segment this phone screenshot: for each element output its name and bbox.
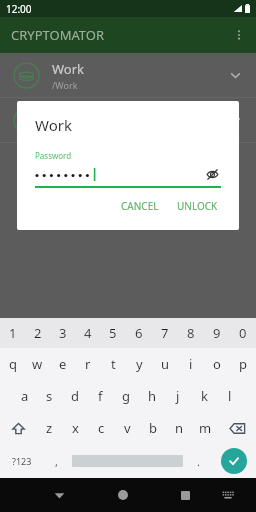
- button[interactable]: o: [204, 348, 230, 380]
- button[interactable]: s: [37, 380, 62, 412]
- button[interactable]: Expand: [218, 103, 252, 137]
- staticText: z: [46, 419, 53, 437]
- button[interactable]: 1: [0, 318, 25, 348]
- button[interactable]: v: [114, 412, 140, 444]
- button[interactable]: Keyboard: [210, 478, 245, 512]
- button[interactable]: 7: [152, 318, 178, 348]
- staticText: e: [59, 355, 67, 373]
- button[interactable]: i: [178, 348, 204, 380]
- button[interactable]: Backspace: [218, 412, 256, 444]
- staticText: g: [122, 387, 130, 405]
- button[interactable]: z: [37, 412, 62, 444]
- staticText: s: [46, 387, 53, 405]
- button[interactable]: b: [140, 412, 166, 444]
- staticText: f: [98, 387, 103, 405]
- staticText: i: [189, 355, 193, 373]
- staticText: 2: [34, 324, 42, 342]
- staticText: n: [175, 419, 184, 437]
- button[interactable]: d: [62, 380, 87, 412]
- button[interactable]: 6: [126, 318, 152, 348]
- button[interactable]: 0: [230, 318, 256, 348]
- staticText: r: [85, 355, 91, 373]
- staticText: 1: [9, 324, 17, 342]
- button[interactable]: Work: [0, 53, 256, 97]
- button[interactable]: 4: [75, 318, 100, 348]
- staticText: m: [199, 419, 212, 437]
- button[interactable]: c: [88, 412, 114, 444]
- button[interactable]: n: [166, 412, 192, 444]
- staticText: /Work: [52, 79, 78, 91]
- staticText: o: [213, 355, 221, 373]
- staticText: 0: [239, 324, 247, 342]
- staticText: l: [228, 387, 232, 405]
- button[interactable]: l: [217, 380, 243, 412]
- staticText: Work: [52, 60, 85, 78]
- button[interactable]: ,: [43, 444, 69, 478]
- button[interactable]: h: [139, 380, 165, 412]
- staticText: h: [148, 387, 157, 405]
- button[interactable]: Recents: [168, 478, 203, 512]
- staticText: Password: [35, 150, 72, 161]
- staticText: p: [239, 355, 247, 373]
- button[interactable]: Show password: [203, 166, 221, 182]
- staticText: q: [9, 355, 17, 373]
- button[interactable]: Home: [105, 478, 140, 512]
- staticText: 3: [59, 324, 67, 342]
- staticText: t: [111, 355, 116, 373]
- staticText: a: [21, 387, 29, 405]
- staticText: CRYPTOMATOR: [11, 26, 105, 44]
- staticText: c: [98, 419, 105, 437]
- button[interactable]: .: [185, 444, 211, 478]
- staticText: 5: [109, 324, 117, 342]
- staticText: Work: [35, 115, 72, 135]
- button[interactable]: Expand: [218, 58, 252, 92]
- button[interactable]: p: [230, 348, 256, 380]
- staticText: x: [72, 419, 79, 437]
- button[interactable]: More options: [222, 18, 256, 52]
- staticText: ,: [55, 454, 58, 469]
- button[interactable]: Space: [69, 444, 185, 478]
- button[interactable]: Enter: [211, 444, 256, 478]
- button[interactable]: e: [50, 348, 75, 380]
- button[interactable]: UNLOCK: [170, 194, 225, 218]
- button[interactable]: k: [191, 380, 217, 412]
- button[interactable]: x: [62, 412, 88, 444]
- staticText: CANCEL: [121, 199, 159, 213]
- button[interactable]: 3: [50, 318, 75, 348]
- staticText: d: [71, 387, 79, 405]
- staticText: b: [149, 419, 157, 437]
- button[interactable]: w: [25, 348, 50, 380]
- button[interactable]: Shift: [0, 412, 37, 444]
- staticText: 7: [161, 324, 169, 342]
- button[interactable]: 9: [204, 318, 230, 348]
- staticText: y: [136, 355, 143, 373]
- button[interactable]: Expand: [0, 98, 256, 142]
- staticText: .: [197, 454, 200, 469]
- button[interactable]: q: [0, 348, 25, 380]
- staticText: 6: [135, 324, 143, 342]
- staticText: 8: [187, 324, 195, 342]
- staticText: v: [124, 419, 131, 437]
- button[interactable]: j: [165, 380, 191, 412]
- staticText: j: [176, 387, 180, 405]
- button[interactable]: a: [12, 380, 37, 412]
- staticText: 4: [84, 324, 92, 342]
- button[interactable]: y: [126, 348, 152, 380]
- button[interactable]: 2: [25, 318, 50, 348]
- button[interactable]: Back: [42, 478, 77, 512]
- staticText: w: [32, 355, 43, 373]
- button[interactable]: u: [152, 348, 178, 380]
- button[interactable]: CANCEL: [114, 194, 166, 218]
- staticText: 9: [213, 324, 221, 342]
- button[interactable]: 5: [100, 318, 126, 348]
- button[interactable]: g: [113, 380, 139, 412]
- staticText: u: [161, 355, 170, 373]
- button[interactable]: t: [100, 348, 126, 380]
- button[interactable]: f: [87, 380, 113, 412]
- button[interactable]: r: [75, 348, 100, 380]
- staticText: 12:00: [6, 2, 32, 16]
- staticText: ?123: [12, 455, 32, 467]
- button[interactable]: m: [192, 412, 218, 444]
- button[interactable]: ?123: [0, 444, 43, 478]
- button[interactable]: 8: [178, 318, 204, 348]
